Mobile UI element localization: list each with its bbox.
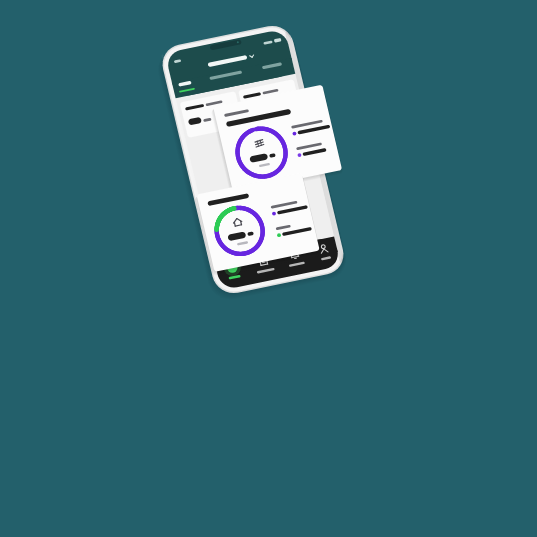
button[interactable]: EDP Solar app preview xyxy=(0,0,537,537)
